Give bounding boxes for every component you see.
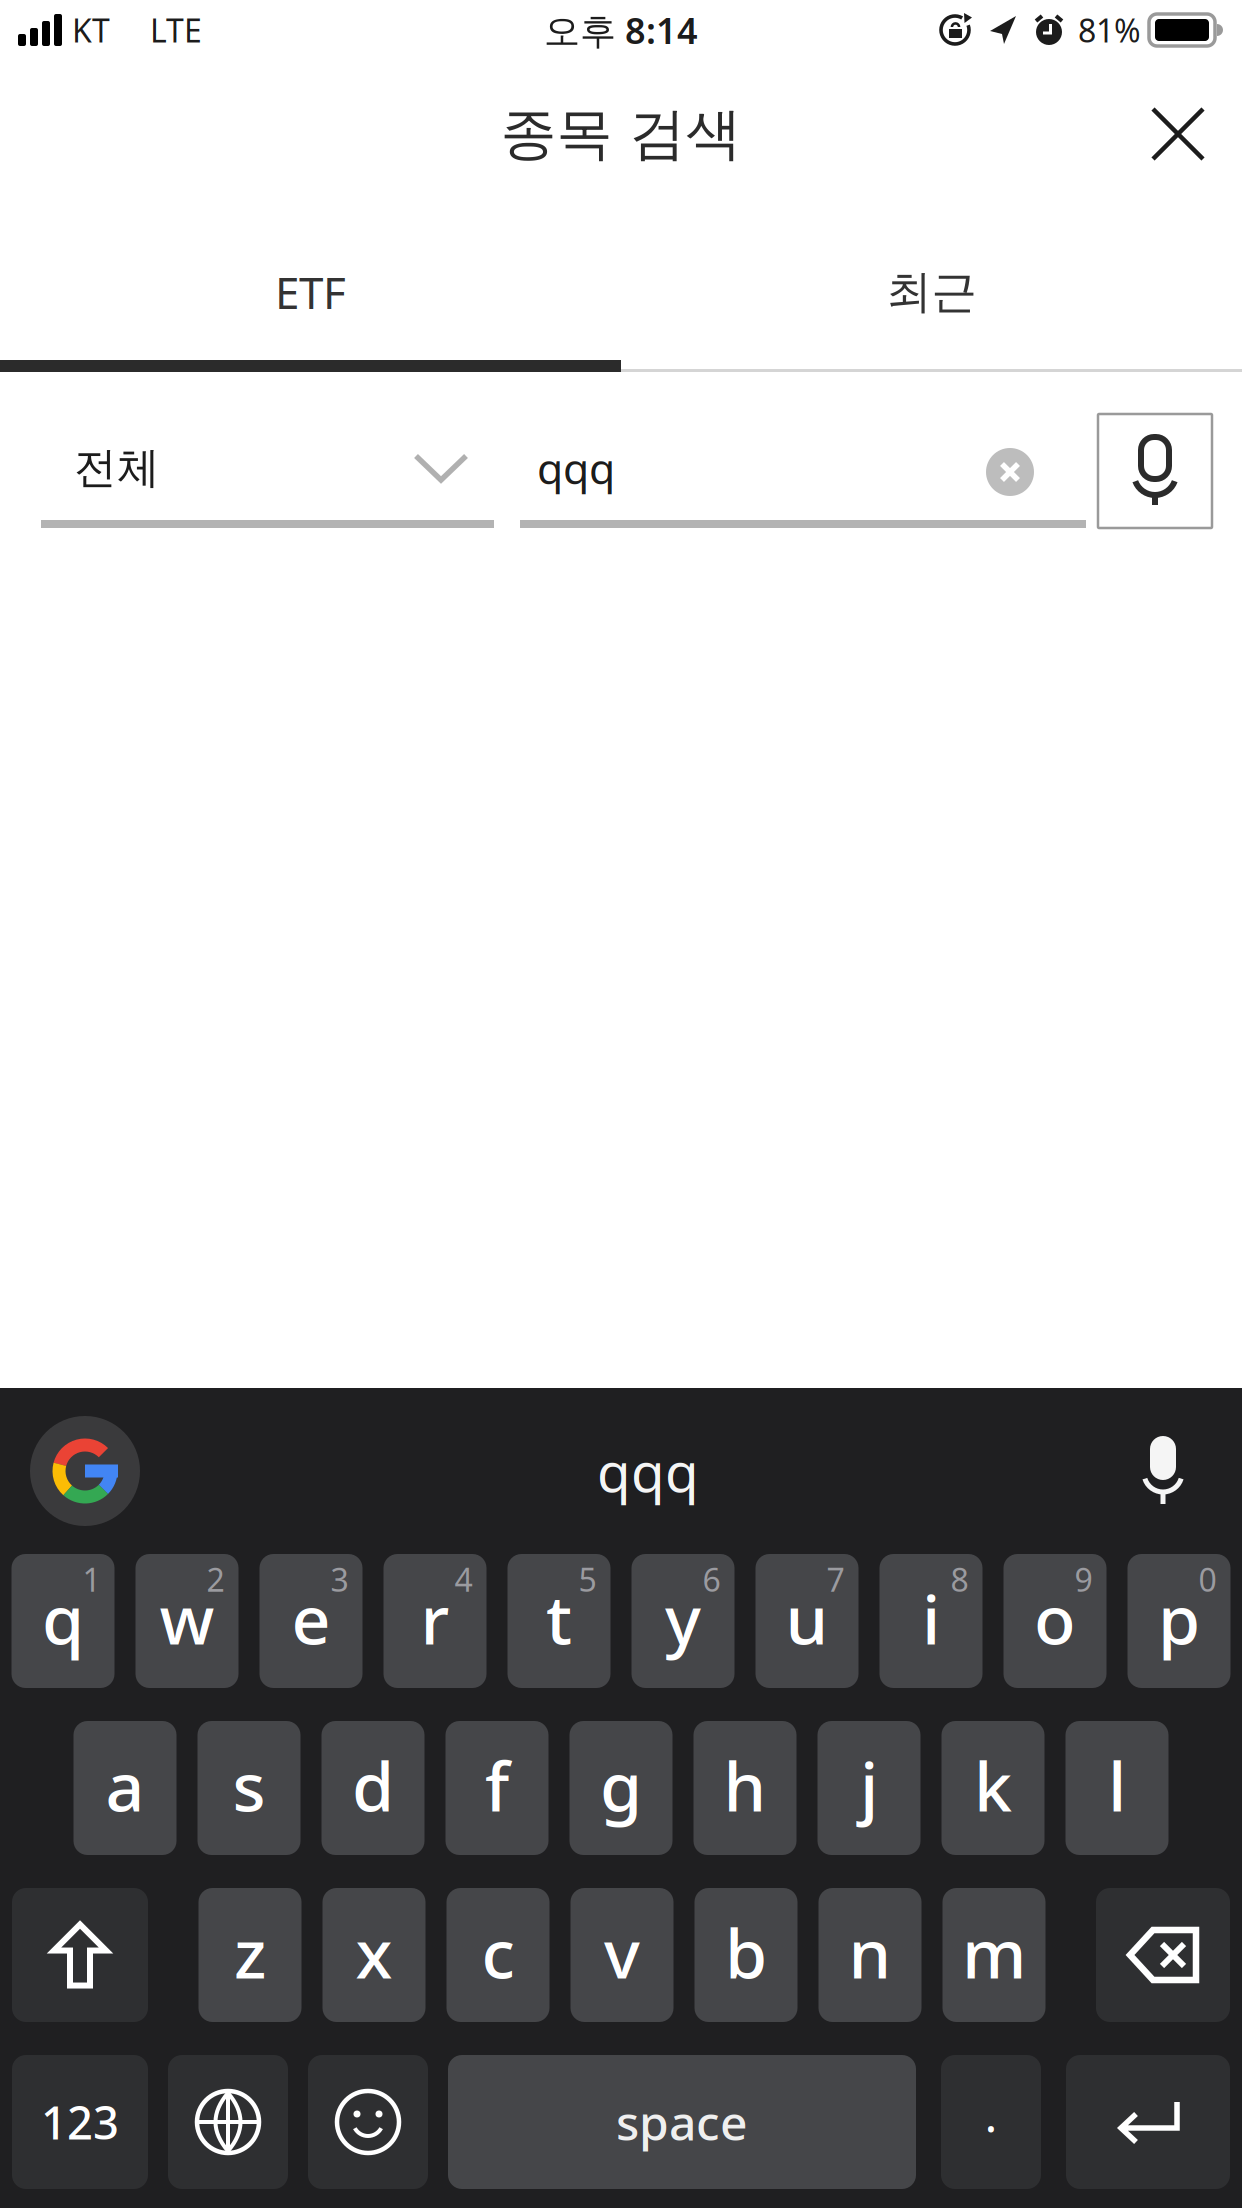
staticText: qqq [597,1435,699,1507]
button[interactable]: w [135,1554,238,1688]
staticText: y [665,1573,701,1663]
staticText: w [159,1573,214,1663]
button[interactable] [1098,414,1212,528]
button[interactable]: g [569,1721,672,1855]
staticText: 6 [702,1558,720,1600]
button[interactable]: d [321,1721,424,1855]
staticText: qqq [537,439,615,496]
button[interactable]: q [11,1554,114,1688]
staticText: KT [72,9,110,51]
button[interactable]: z [198,1888,301,2022]
staticText: r [420,1573,449,1663]
staticText: 오후 8:14 [544,6,698,54]
staticText: f [485,1740,509,1830]
button[interactable]: u [755,1554,858,1688]
staticText: space [616,2090,748,2154]
button[interactable] [1152,108,1242,160]
button[interactable] [0,1416,140,1526]
staticText: s [232,1740,265,1830]
staticText: o [1034,1573,1076,1663]
button[interactable]: a [73,1721,176,1855]
staticText: m [962,1907,1026,1997]
button[interactable]: c [446,1888,549,2022]
button[interactable]: o [1003,1554,1106,1688]
staticText: 7 [826,1558,844,1600]
staticText: b [725,1907,767,1997]
staticText: 1 [82,1558,100,1600]
staticText: g [600,1740,642,1830]
button[interactable]: b [694,1888,797,2022]
staticText: d [352,1740,394,1830]
staticText: 0 [1198,1558,1216,1600]
button[interactable]: n [818,1888,921,2022]
staticText: LTE [150,9,202,51]
staticText: l [1108,1740,1126,1830]
staticText: c [481,1907,514,1997]
button[interactable]: f [445,1721,548,1855]
button[interactable] [308,2055,428,2189]
staticText: 2 [206,1558,224,1600]
button[interactable] [1142,1436,1242,1506]
staticText: 8 [950,1558,968,1600]
staticText: 종목 검색 [500,100,741,168]
staticText: h [723,1740,766,1830]
button[interactable]: t [507,1554,610,1688]
staticText: z [234,1907,266,1997]
staticText: . [984,2082,997,2146]
staticText: n [848,1907,891,1997]
button[interactable] [168,2055,288,2189]
button[interactable] [1096,1888,1230,2022]
staticText: p [1158,1573,1200,1663]
staticText: k [974,1740,1012,1830]
staticText: 4 [454,1558,472,1600]
button[interactable]: x [322,1888,425,2022]
button[interactable]: . [941,2055,1041,2189]
staticText: ETF [275,263,346,321]
staticText: 5 [578,1558,596,1600]
staticText: 전체 [74,442,160,494]
staticText: x [355,1907,392,1997]
button[interactable]: 123 [12,2055,148,2189]
staticText: j [860,1740,878,1830]
button[interactable]: h [693,1721,796,1855]
staticText: q [42,1573,84,1663]
button[interactable]: 전체 [41,442,494,528]
staticText: t [546,1573,572,1663]
staticText: 최근 [886,264,976,320]
button[interactable] [12,1888,148,2022]
staticText: 81% [1078,9,1141,51]
button[interactable]: e [259,1554,362,1688]
button[interactable]: ETF [0,208,621,360]
button[interactable]: p [1127,1554,1230,1688]
staticText: 9 [1074,1558,1092,1600]
button[interactable] [1066,2055,1230,2189]
button[interactable]: qqq [520,439,1086,528]
button[interactable]: y [631,1554,734,1688]
button[interactable]: i [879,1554,982,1688]
button[interactable]: m [942,1888,1045,2022]
button[interactable]: v [570,1888,673,2022]
button[interactable]: r [383,1554,486,1688]
staticText: u [785,1573,828,1663]
button[interactable] [986,448,1086,496]
button[interactable]: k [941,1721,1044,1855]
staticText: 3 [330,1558,348,1600]
staticText: v [604,1907,640,1997]
button[interactable]: space [448,2055,916,2189]
button[interactable]: l [1065,1721,1168,1855]
button[interactable]: s [197,1721,300,1855]
staticText: a [105,1740,144,1830]
staticText: 123 [41,2092,119,2152]
staticText: e [291,1573,330,1663]
staticText: i [922,1573,940,1663]
button[interactable]: j [817,1721,920,1855]
button[interactable]: 최근 [621,208,1242,360]
